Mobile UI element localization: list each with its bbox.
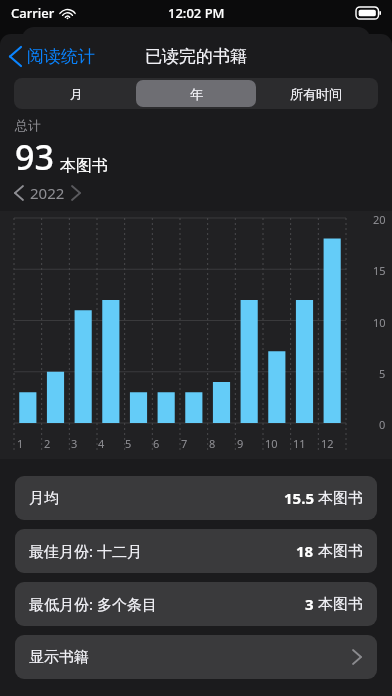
staticText: Carrier [11,4,55,22]
staticText: 6 [153,436,160,451]
staticText: 0 [379,417,386,432]
staticText: 12:02 PM [168,4,225,22]
button[interactable]: 月 [16,80,136,107]
staticText: 已读完的书籍 [145,46,247,67]
staticText: 18 [296,541,314,561]
staticText: 93 [15,134,54,180]
staticText: 阅读统计 [27,46,95,67]
staticText: 本图书 [318,542,363,561]
staticText: 本图书 [318,595,363,614]
button[interactable]: 显示书籍 [15,635,377,679]
staticText: 显示书籍 [29,648,89,667]
staticText: 2 [44,436,51,451]
staticText: 4 [98,436,105,451]
button[interactable]: 阅读统计 [0,40,103,73]
staticText: 年 [190,86,203,102]
staticText: 5 [379,366,386,381]
staticText: 15 [373,263,386,278]
staticText: 11 [293,436,306,451]
staticText: 9 [237,436,244,451]
staticText: 月 [70,86,83,102]
button[interactable]: Previous year [15,183,30,203]
staticText: 1 [17,436,24,451]
staticText: 12 [321,436,334,451]
staticText: 20 [373,212,386,227]
button[interactable]: 月均 [15,476,377,520]
button[interactable]: 所有时间 [256,80,376,107]
staticText: 10 [265,436,278,451]
staticText: 月均 [29,489,59,508]
staticText: 5 [125,436,132,451]
staticText: 7 [181,436,188,451]
button[interactable]: 最佳月份: 十二月 [15,529,377,573]
staticText: 本图书 [318,489,363,508]
button[interactable]: 年 [136,80,256,107]
staticText: 所有时间 [290,86,342,102]
staticText: 3 [71,436,78,451]
staticText: 8 [209,436,216,451]
staticText: 15.5 [284,488,314,508]
button[interactable]: Next year [65,183,80,203]
staticText: 最低月份: 多个条目 [29,594,157,614]
button[interactable]: 最低月份: 多个条目 [15,582,377,626]
staticText: 2022 [30,183,65,203]
staticText: 最佳月份: 十二月 [29,541,142,561]
staticText: 3 [305,594,314,614]
staticText: 10 [373,315,386,330]
staticText: 总计 [15,117,41,133]
staticText: 本图书 [60,156,108,176]
